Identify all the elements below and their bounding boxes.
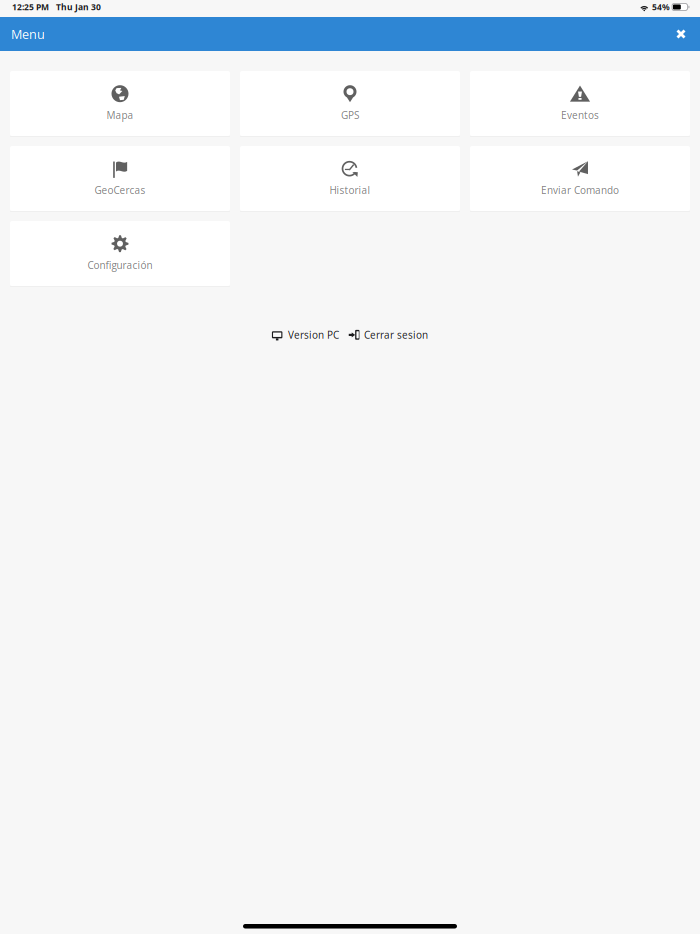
staticText: GeoCercas xyxy=(94,183,145,197)
button[interactable]: Eventos xyxy=(470,71,690,136)
staticText: Menu xyxy=(11,25,45,43)
staticText: Cerrar sesion xyxy=(364,328,428,342)
staticText: Version PC xyxy=(288,328,339,342)
staticText: Historial xyxy=(329,183,370,197)
button[interactable]: Historial xyxy=(240,146,460,211)
button[interactable]: GPS xyxy=(240,71,460,136)
staticText: Eventos xyxy=(561,108,599,122)
button[interactable]: Configuración xyxy=(10,221,230,286)
button[interactable]: Close xyxy=(668,21,694,47)
button[interactable]: Enviar Comando xyxy=(470,146,690,211)
staticText: 54% xyxy=(652,1,670,13)
button[interactable]: GeoCercas xyxy=(10,146,230,211)
staticText: Configuración xyxy=(87,258,152,272)
staticText: Enviar Comando xyxy=(541,183,619,197)
staticText: 12:25 PM xyxy=(12,1,49,13)
button[interactable]: Version PC xyxy=(272,328,339,342)
staticText: GPS xyxy=(341,108,359,122)
staticText: Thu Jan 30 xyxy=(56,1,101,13)
staticText: Mapa xyxy=(106,108,133,122)
button[interactable]: Mapa xyxy=(10,71,230,136)
button[interactable]: Cerrar sesion xyxy=(349,328,428,342)
